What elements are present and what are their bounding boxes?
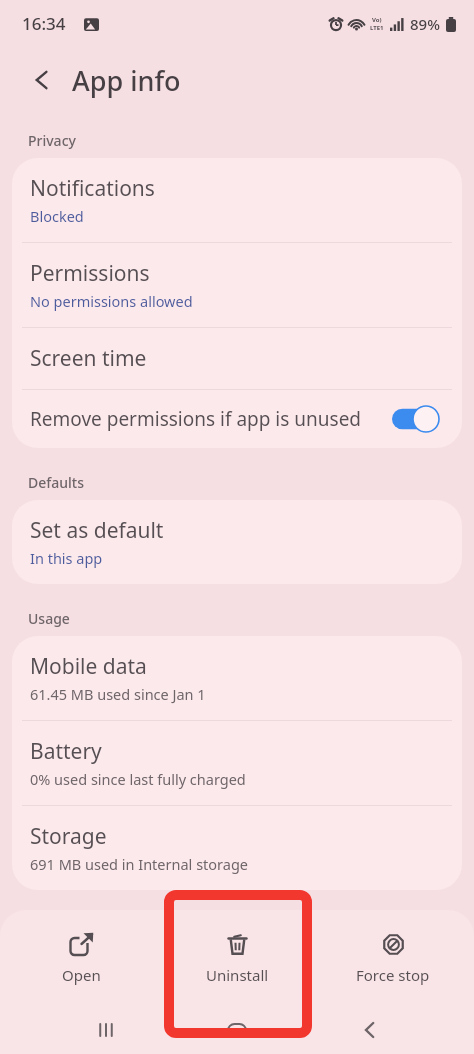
staticText: Battery <box>30 737 102 766</box>
staticText: 0% used since last fully charged <box>30 769 246 789</box>
button[interactable]: Mobile data <box>12 636 462 720</box>
staticText: In this app <box>30 548 103 568</box>
button[interactable]: Back <box>350 1010 390 1050</box>
button[interactable]: Battery <box>12 721 462 805</box>
staticText: Set as default <box>30 516 164 545</box>
button[interactable]: Set as default <box>12 500 462 584</box>
staticText: App info <box>72 62 181 99</box>
staticText: Open <box>62 965 101 985</box>
button[interactable]: Storage <box>12 806 462 890</box>
staticText: Uninstall <box>206 965 269 985</box>
button[interactable]: Notifications <box>12 158 462 242</box>
staticText: 89% <box>410 14 440 34</box>
button[interactable]: Back <box>22 60 62 100</box>
staticText: Privacy <box>28 131 76 150</box>
staticText: LTE1 <box>370 24 384 32</box>
button[interactable]: Uninstall <box>162 926 312 991</box>
button[interactable]: Force stop <box>318 926 468 991</box>
staticText: 691 MB used in Internal storage <box>30 854 249 874</box>
staticText: 16:34 <box>22 12 66 35</box>
staticText: 61.45 MB used since Jan 1 <box>30 684 206 704</box>
staticText: Defaults <box>28 473 84 492</box>
staticText: Usage <box>28 609 70 628</box>
staticText: Remove permissions if app is unused <box>30 406 392 432</box>
staticText: Blocked <box>30 206 84 226</box>
staticText: Force stop <box>356 965 430 985</box>
button[interactable]: Remove permissions if app is unused <box>12 390 462 448</box>
staticText: Notifications <box>30 174 155 203</box>
staticText: Mobile data <box>30 652 147 681</box>
staticText: Screen time <box>30 344 147 373</box>
staticText: No permissions allowed <box>30 291 193 311</box>
staticText: Storage <box>30 822 107 851</box>
button[interactable]: Open <box>6 926 156 991</box>
staticText: Permissions <box>30 259 150 288</box>
button[interactable]: Home <box>217 1010 257 1050</box>
button[interactable]: Screen time <box>12 328 462 389</box>
button[interactable]: Permissions <box>12 243 462 327</box>
button[interactable]: Recent apps <box>86 1010 126 1050</box>
staticText: Vo) <box>372 16 382 24</box>
